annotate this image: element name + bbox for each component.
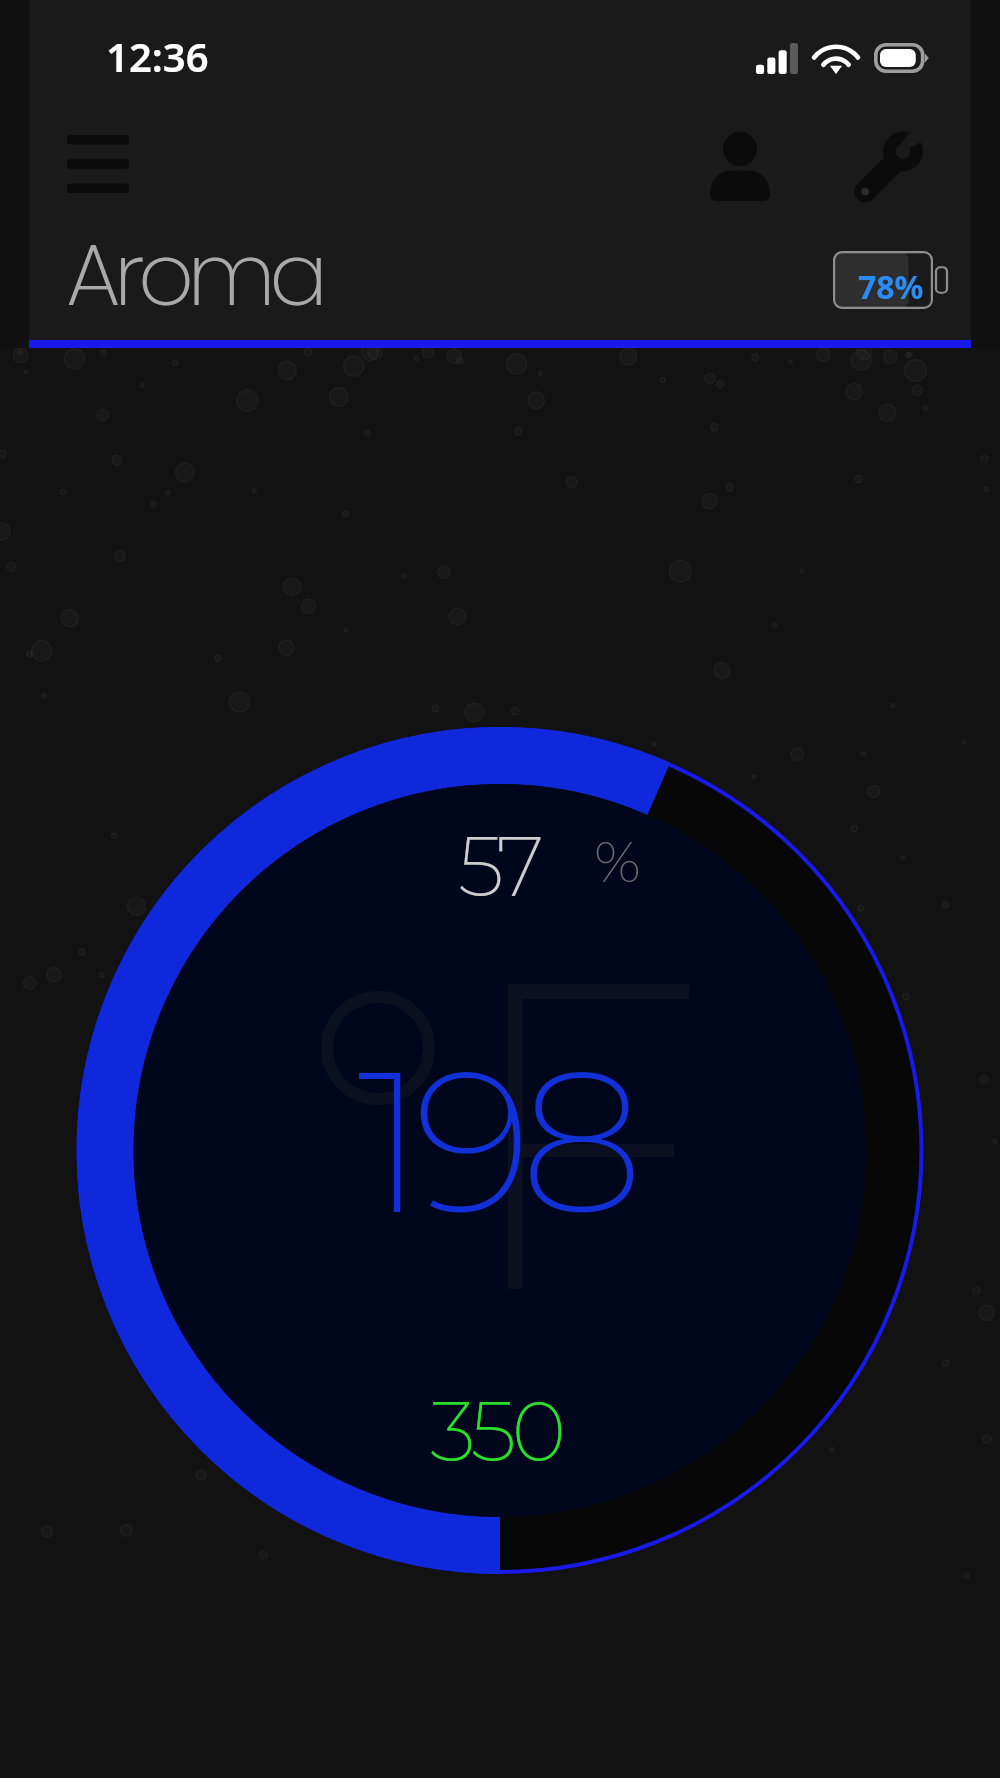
staticText: 78% (858, 265, 924, 309)
button[interactable]: Account (678, 104, 802, 228)
staticText: % (594, 826, 641, 897)
button[interactable]: Device battery 78 percent (833, 250, 949, 310)
staticText: Aroma (66, 214, 322, 336)
staticText: 198 (357, 1020, 632, 1261)
staticText: 350 (430, 1381, 562, 1482)
button[interactable]: Menu (36, 112, 160, 216)
staticText: 57 (458, 816, 539, 917)
staticText: 12:36 (106, 29, 209, 83)
button[interactable]: Settings (827, 104, 951, 228)
